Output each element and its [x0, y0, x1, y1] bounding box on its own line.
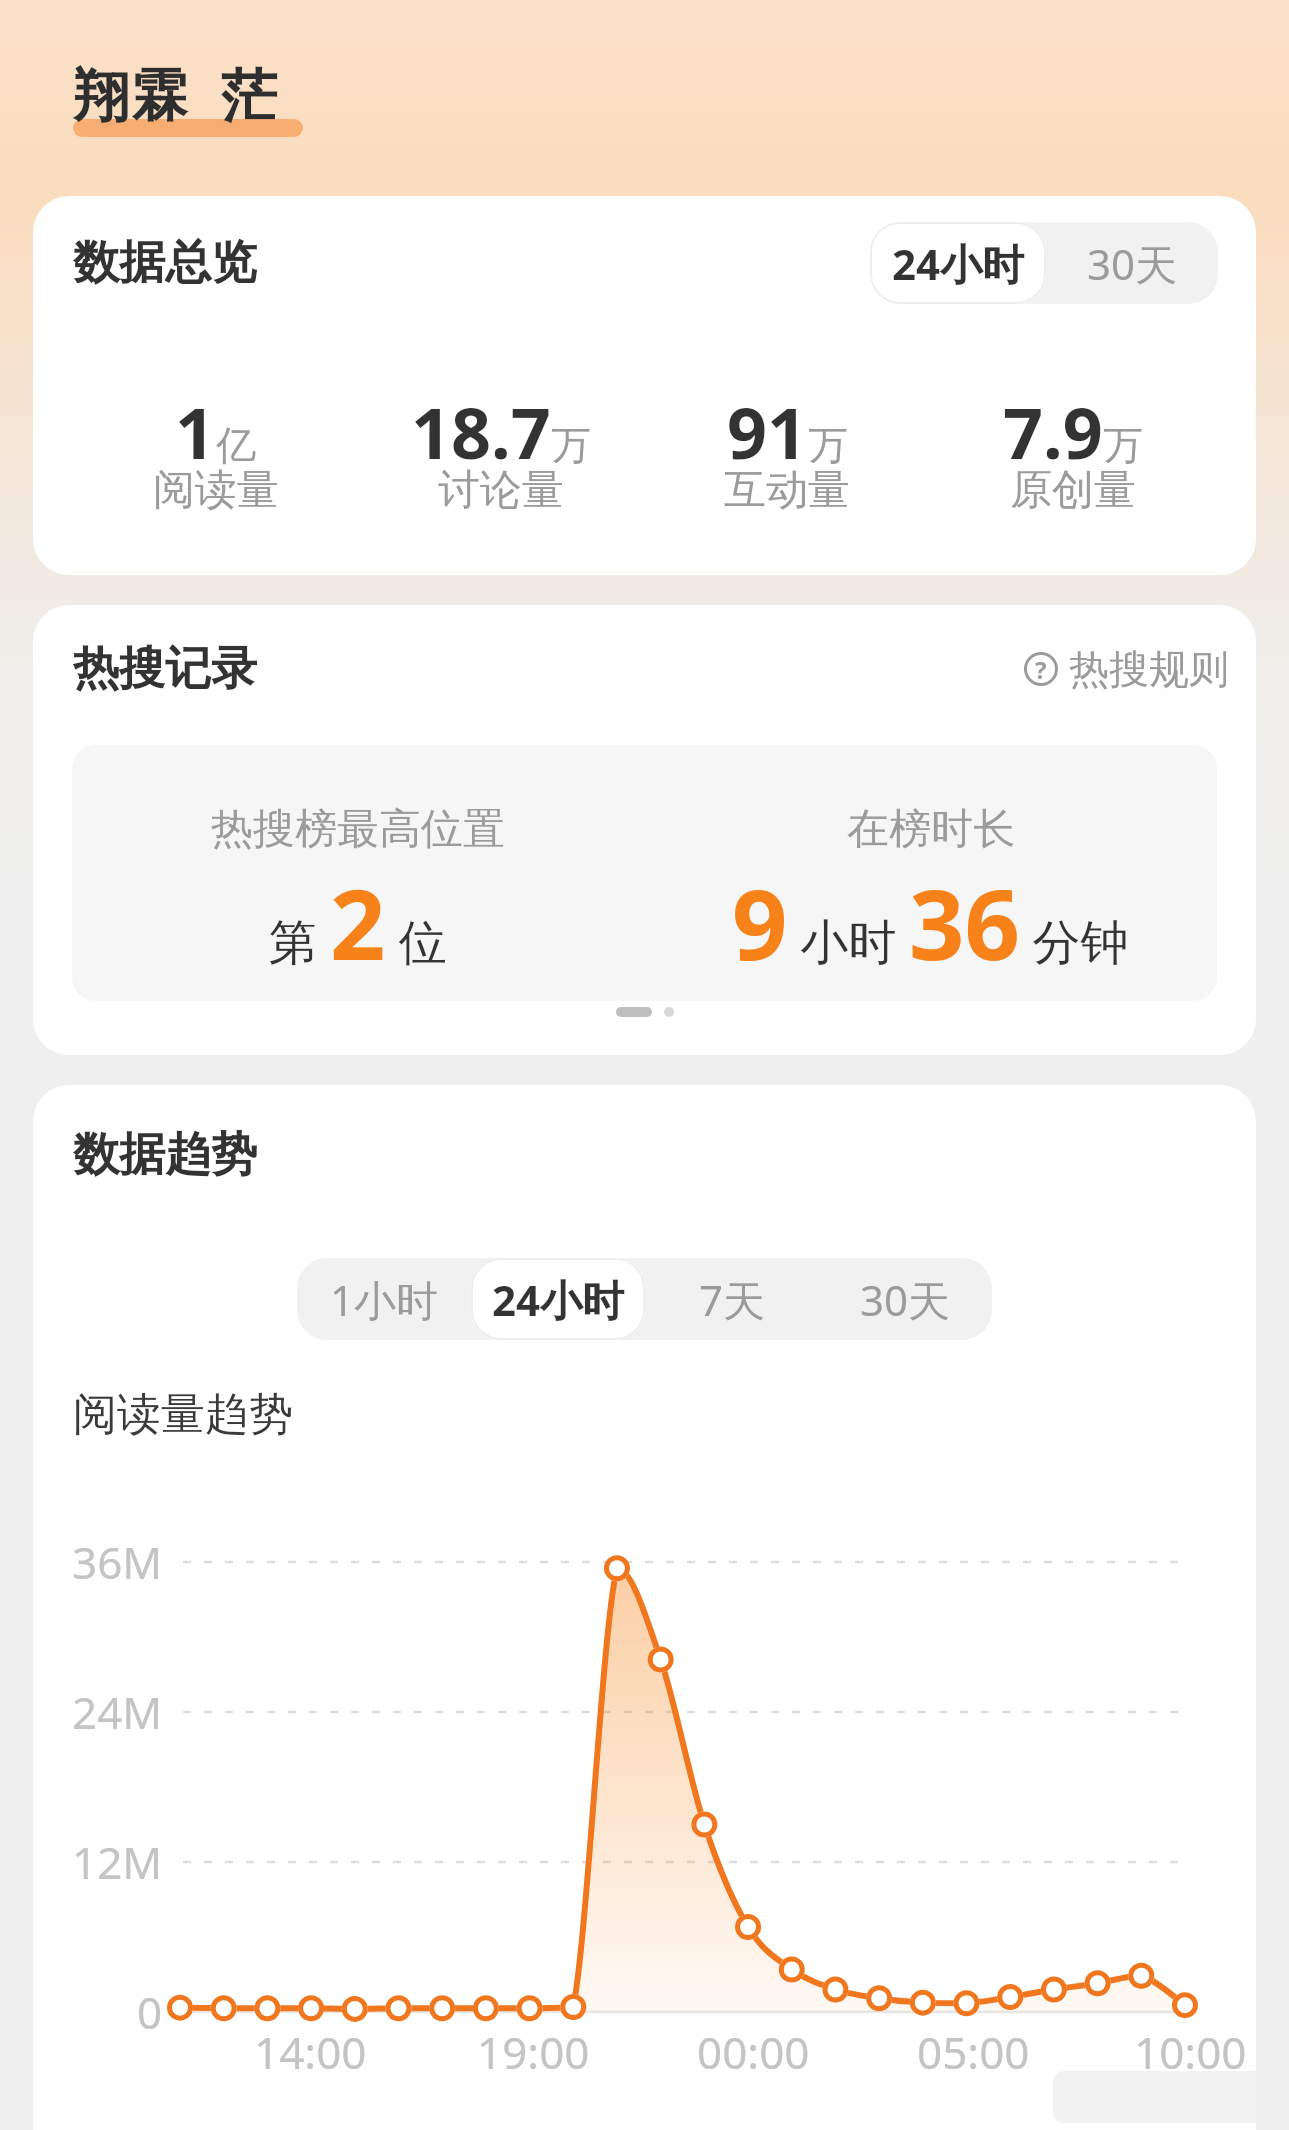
staticText: 原创量	[1010, 464, 1136, 517]
button[interactable]: 24小时	[870, 222, 1046, 304]
staticText: 热搜规则	[1069, 644, 1229, 694]
button[interactable]: 1小时	[297, 1258, 471, 1340]
button[interactable]: 7天	[645, 1258, 819, 1340]
button[interactable]: 7.9	[930, 384, 1216, 532]
staticText: 在榜时长	[847, 803, 1015, 856]
staticText: 10:00	[1134, 2022, 1247, 2082]
staticText: 30天	[860, 1271, 951, 1328]
staticText: 数据趋势	[73, 1126, 257, 1184]
staticText: 91	[727, 384, 808, 479]
staticText: 位	[386, 908, 447, 974]
staticText: 9	[732, 856, 788, 988]
staticText: 亿	[216, 420, 256, 470]
staticText: 小时	[788, 908, 909, 974]
staticText: 18.7	[411, 384, 551, 479]
staticText: 热搜记录	[73, 640, 257, 698]
staticText: 14:00	[254, 2022, 367, 2082]
staticText: 翔霖 茫	[72, 55, 278, 131]
staticText: ?	[1035, 653, 1047, 686]
staticText: 12M	[72, 1832, 163, 1892]
staticText: 24M	[72, 1682, 163, 1742]
button[interactable]: ?	[1023, 639, 1229, 699]
staticText: 万	[1103, 420, 1143, 470]
staticText: 0	[137, 1982, 163, 2042]
staticText: 24小时	[892, 235, 1025, 292]
button[interactable]: 18.7	[358, 384, 644, 532]
staticText: 05:00	[917, 2022, 1030, 2082]
staticText: 1	[175, 384, 216, 479]
staticText: 36M	[72, 1532, 163, 1592]
staticText: 24小时	[492, 1271, 625, 1328]
staticText: 2	[330, 856, 386, 988]
staticText: 7.9	[1003, 384, 1103, 479]
staticText: 1小时	[330, 1271, 439, 1328]
staticText: 讨论量	[438, 464, 564, 517]
staticText: 36	[909, 856, 1020, 988]
staticText: 30天	[1087, 235, 1178, 292]
staticText: 热搜榜最高位置	[211, 803, 505, 856]
button[interactable]: 30天	[1046, 222, 1218, 304]
staticText: 阅读量趋势	[73, 1387, 293, 1442]
button[interactable]: 91	[644, 384, 930, 532]
staticText: 19:00	[477, 2022, 590, 2082]
staticText: 阅读量	[153, 464, 279, 517]
staticText: 数据总览	[73, 234, 257, 292]
staticText: 万	[551, 420, 591, 470]
staticText: 分钟	[1020, 908, 1129, 974]
button[interactable]: 1	[73, 384, 358, 532]
button[interactable]: 24小时	[471, 1258, 645, 1340]
staticText: 互动量	[724, 464, 850, 517]
staticText: 万	[808, 420, 848, 470]
button[interactable]: 30天	[819, 1258, 992, 1340]
staticText: 00:00	[697, 2022, 810, 2082]
staticText: 第	[269, 908, 330, 974]
staticText: 7天	[699, 1271, 766, 1328]
